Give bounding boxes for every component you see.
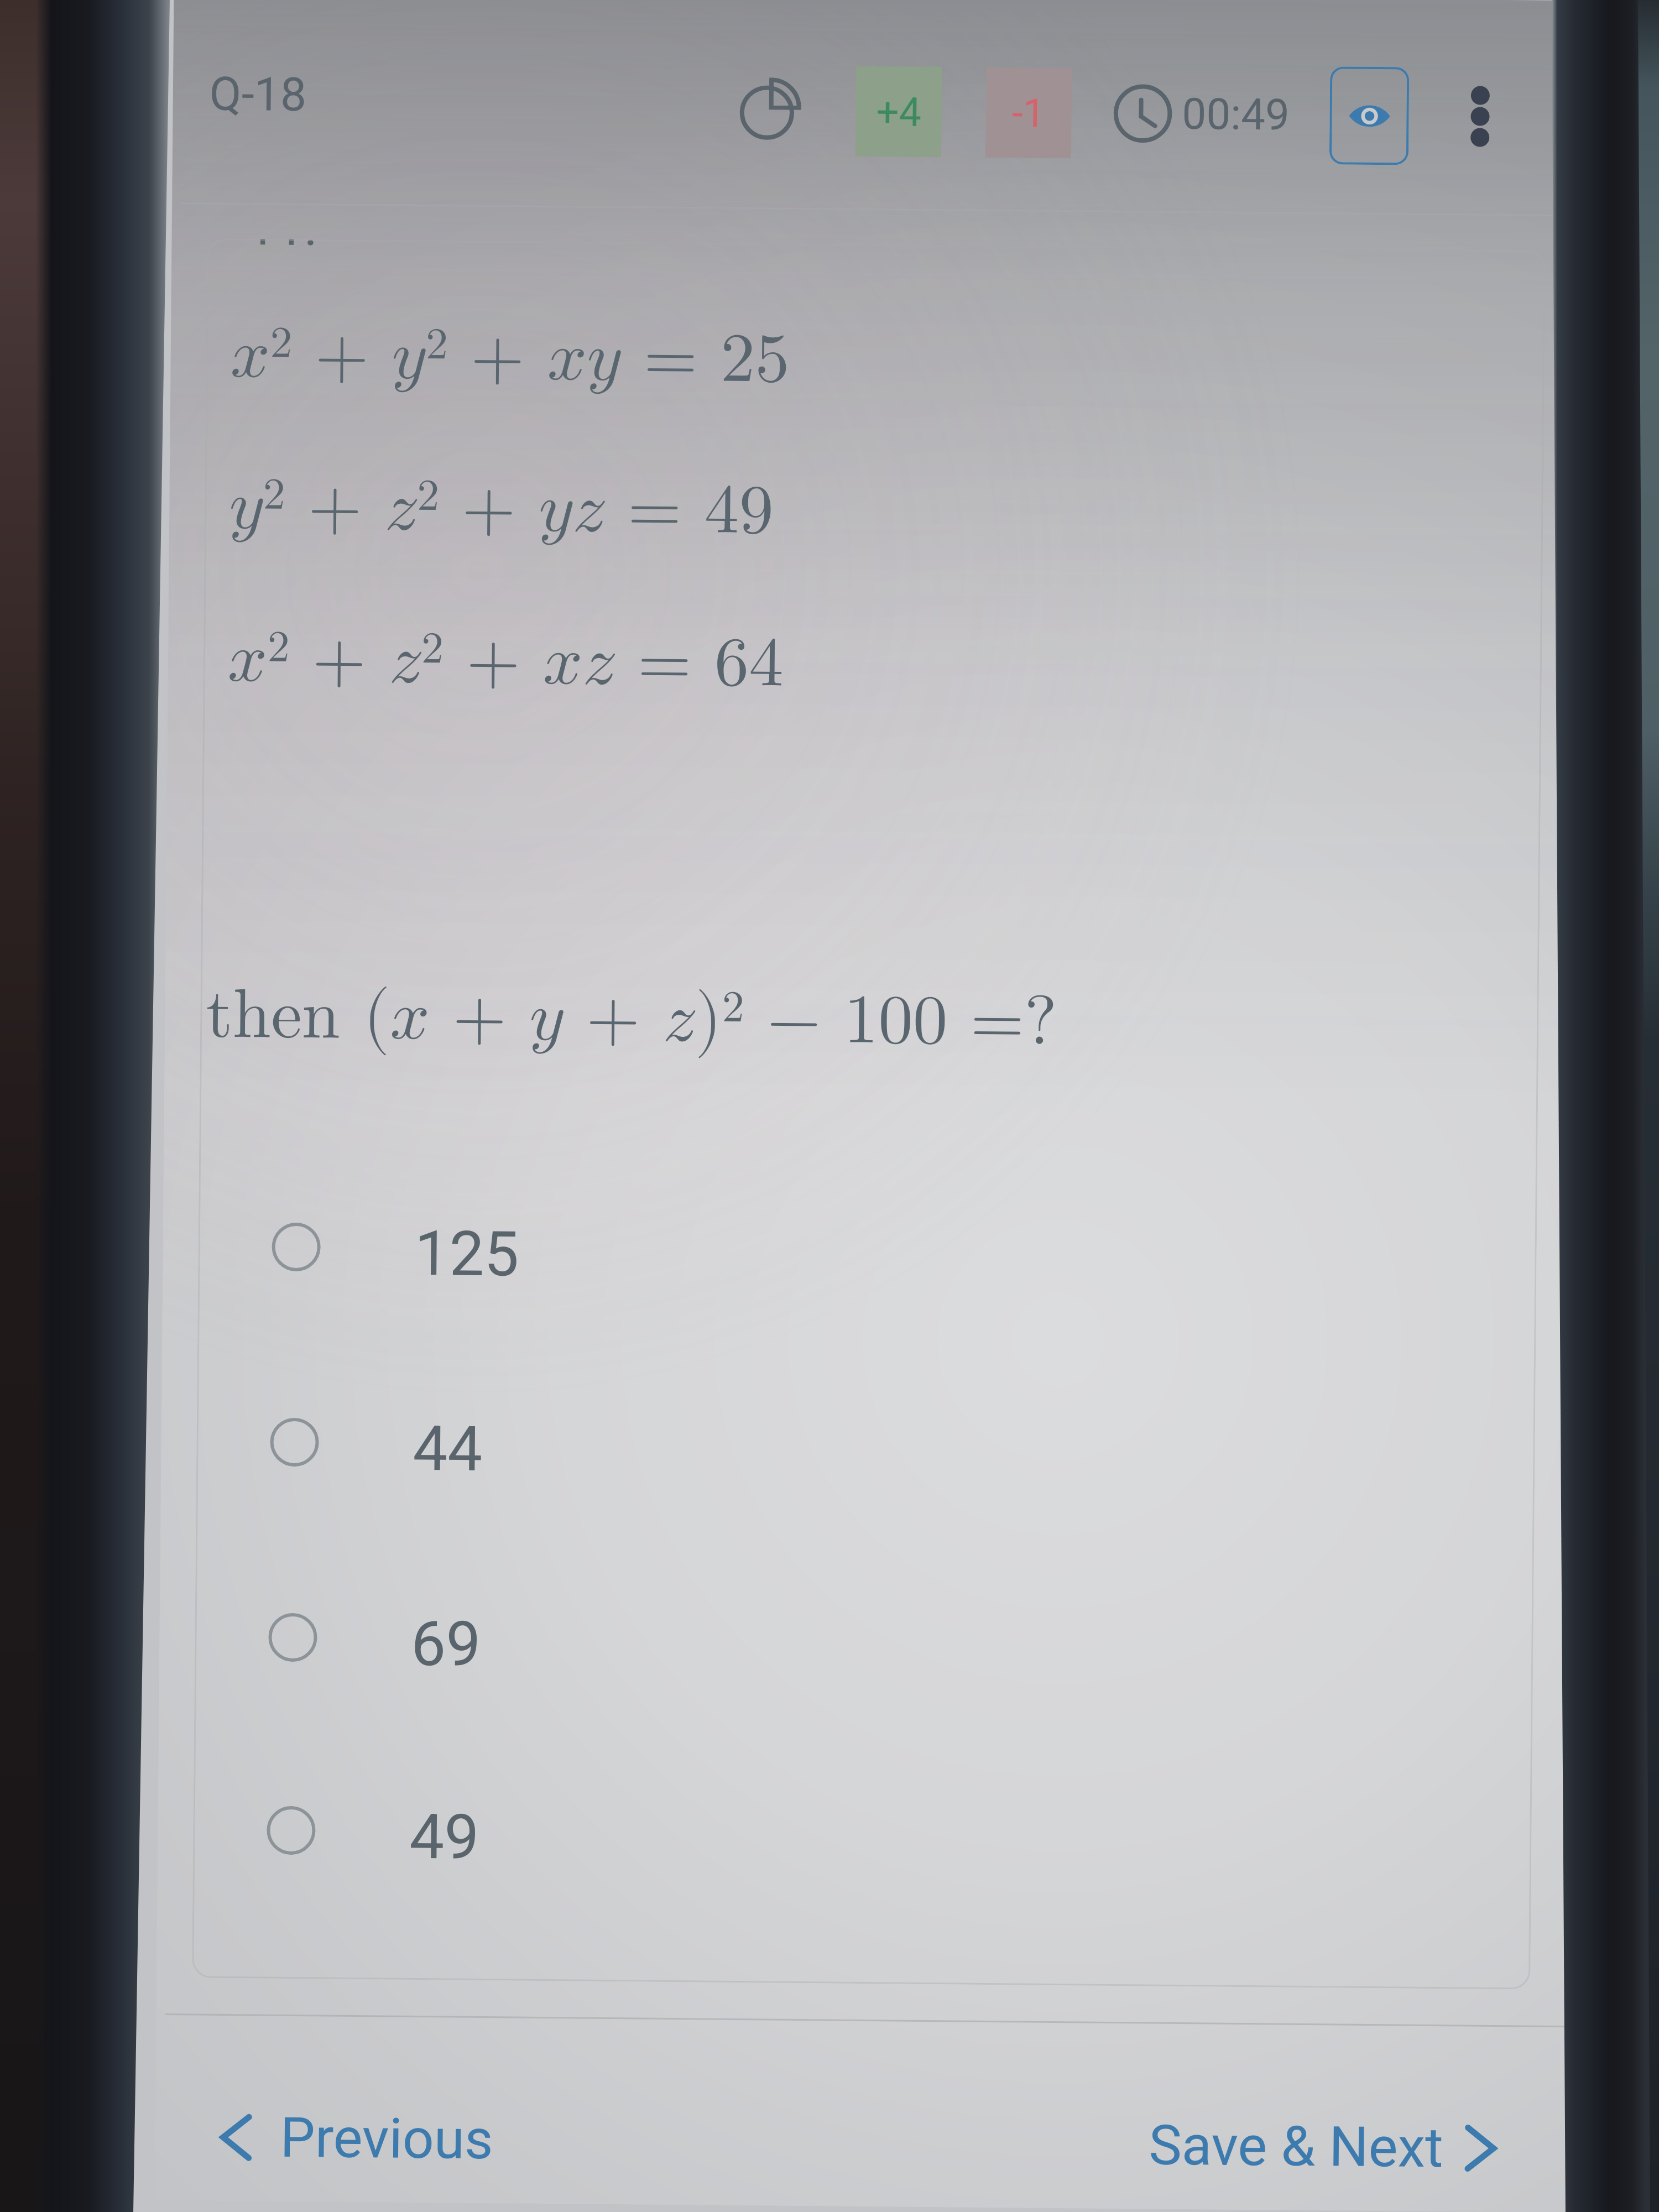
- button[interactable]: 44: [196, 1383, 1535, 1511]
- staticText: then (𝑥 + 𝑦 + 𝑧)2 − 100 =?: [206, 981, 1057, 1057]
- button[interactable]: 69: [194, 1578, 1534, 1706]
- staticText: 125: [414, 1217, 519, 1290]
- staticText: 𝑥2 + 𝑧2 + 𝑥𝑧 = 64: [228, 625, 784, 699]
- staticText: 𝑦2 + 𝑧2 + 𝑦𝑧 = 49: [229, 472, 774, 546]
- button[interactable]: Save & Next: [1120, 2096, 1526, 2197]
- staticText: 𝑥2 + 𝑦2 + 𝑥𝑦 = 25: [230, 321, 790, 395]
- staticText: +4: [876, 88, 922, 135]
- button[interactable]: Statistics: [729, 68, 813, 152]
- button[interactable]: More options: [1449, 86, 1511, 147]
- button[interactable]: Show answer: [1329, 66, 1409, 165]
- staticText: Previous: [280, 2105, 493, 2172]
- staticText: 69: [411, 1607, 481, 1681]
- staticText: 11.: [247, 239, 318, 258]
- staticText: 00:49: [1182, 89, 1290, 140]
- staticText: Save & Next: [1149, 2113, 1444, 2180]
- button[interactable]: 49: [193, 1771, 1532, 1899]
- staticText: Q-18: [209, 67, 307, 122]
- staticText: 44: [412, 1412, 483, 1485]
- button[interactable]: 125: [198, 1188, 1537, 1316]
- staticText: 49: [409, 1800, 479, 1874]
- staticText: -1: [1012, 90, 1046, 136]
- button[interactable]: Previous: [190, 2088, 522, 2189]
